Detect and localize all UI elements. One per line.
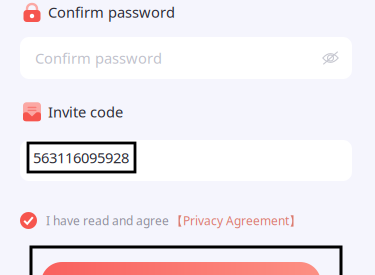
staticText: Invite code xyxy=(48,102,123,121)
button[interactable]: Confirm password xyxy=(20,37,352,79)
staticText: Confirm password xyxy=(35,48,162,68)
staticText: 563116095928 xyxy=(33,148,129,167)
button[interactable]: I have read and agree xyxy=(20,212,301,229)
staticText: Confirm password xyxy=(48,2,175,22)
button[interactable] xyxy=(31,247,341,275)
staticText: 【Privacy Agreement】 xyxy=(171,212,301,228)
staticText: I have read and agree xyxy=(46,212,169,228)
